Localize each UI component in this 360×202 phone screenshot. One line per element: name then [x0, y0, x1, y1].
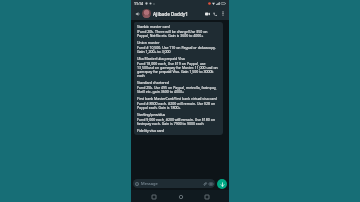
staticText: Sterling/providus [137, 112, 166, 117]
staticText: (Fund 20k. There will be charge)Use $50 … [137, 29, 220, 38]
staticText: Union master [137, 40, 160, 45]
button[interactable]: Voice call [211, 10, 219, 18]
staticText: Ajibade Daddy1 [153, 11, 188, 17]
staticText: Fund 9,000 each, #200 will remain. Use $… [137, 117, 220, 126]
staticText: Stanbic master card [137, 24, 170, 29]
button[interactable]: Stanbic master card [134, 22, 223, 135]
button[interactable]: Message [133, 179, 215, 188]
button[interactable]: Scroll to bottom [217, 179, 227, 189]
staticText: Message [141, 181, 203, 186]
staticText: First bank MasterCard/first bank virtual… [137, 96, 217, 101]
button[interactable]: Recent apps [149, 192, 158, 201]
staticText: Fund 18,000 each, Use $19 on Paypal, use… [137, 61, 220, 78]
staticText: Fund 25k. Use 495 on Paypal, metrolla, f… [137, 85, 220, 94]
button[interactable]: More options [219, 10, 226, 17]
staticText: Fund # 8500 each. #200 will remain. Use … [137, 101, 220, 110]
staticText: Standard chartered [137, 80, 169, 85]
button[interactable]: Video call [203, 10, 211, 18]
staticText: Fund # 10,500. Use 110 on Paypal or doka… [137, 45, 220, 54]
button[interactable]: Home [176, 192, 185, 201]
staticText: 11:14 [134, 1, 143, 6]
button[interactable]: Ajibade Daddy1 [153, 11, 203, 17]
button[interactable]: Back [202, 192, 211, 201]
button[interactable]: Back [134, 10, 141, 17]
staticText: Uba Master/uba prepaid Visa [137, 56, 185, 61]
button[interactable]: Profile photo [142, 9, 151, 18]
staticText: Fidelity visa card [137, 128, 165, 133]
